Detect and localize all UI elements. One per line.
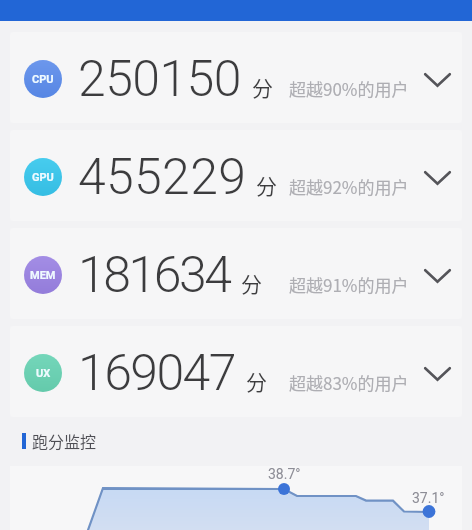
staticText: 38.7° bbox=[268, 466, 301, 482]
staticText: 250150 bbox=[78, 50, 241, 109]
staticText: 分 bbox=[241, 268, 262, 298]
staticText: 455229 bbox=[78, 148, 247, 207]
staticText: 分 bbox=[246, 366, 267, 396]
button[interactable]: Expand bbox=[417, 157, 458, 198]
staticText: 181634 bbox=[78, 246, 230, 305]
button[interactable]: Expand bbox=[417, 59, 458, 100]
staticText: 跑分监控 bbox=[32, 429, 97, 452]
button[interactable]: CPU bbox=[10, 32, 462, 123]
staticText: 169047 bbox=[78, 344, 235, 403]
staticText: 超越91%的用户 bbox=[289, 272, 409, 297]
staticText: GPU bbox=[32, 171, 54, 184]
staticText: MEM bbox=[30, 269, 56, 282]
button[interactable]: GPU bbox=[10, 130, 462, 221]
staticText: 分 bbox=[252, 72, 273, 102]
staticText: UX bbox=[36, 367, 51, 380]
staticText: 分 bbox=[256, 170, 277, 200]
button[interactable]: UX bbox=[10, 326, 462, 417]
staticText: 超越92%的用户 bbox=[289, 174, 409, 199]
button[interactable]: Expand bbox=[417, 255, 458, 296]
staticText: 超越90%的用户 bbox=[289, 76, 409, 101]
staticText: 超越83%的用户 bbox=[289, 370, 409, 395]
button[interactable]: MEM bbox=[10, 228, 462, 319]
button[interactable]: Expand bbox=[417, 353, 458, 394]
staticText: CPU bbox=[32, 73, 54, 86]
staticText: 37.1° bbox=[412, 490, 445, 506]
